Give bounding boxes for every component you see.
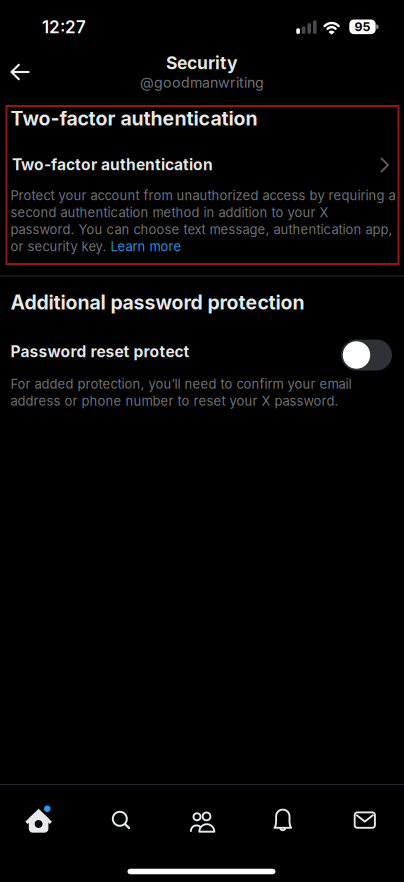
button[interactable]: Search	[86, 795, 156, 845]
staticText: Two-factor authentication	[12, 155, 213, 174]
button[interactable]: Back	[0, 50, 44, 94]
staticText: password. You can choose text message, a…	[10, 222, 392, 237]
staticText: or security key.	[10, 239, 110, 254]
staticText: second authentication method in addition…	[10, 205, 328, 220]
staticText: Security	[166, 52, 238, 74]
staticText: 95	[354, 19, 370, 34]
button[interactable]: Notifications	[248, 795, 318, 845]
staticText: @goodmanwriting	[140, 74, 264, 91]
staticText: 12:27	[42, 17, 86, 37]
staticText: Additional password protection	[10, 291, 304, 314]
staticText: Password reset protect	[10, 342, 189, 361]
button[interactable]: Learn more	[110, 239, 181, 254]
staticText: For added protection, you’ll need to con…	[10, 376, 351, 392]
staticText: Learn more	[110, 239, 181, 254]
button[interactable]: Messages	[329, 795, 399, 845]
button[interactable]: Home	[5, 795, 75, 845]
staticText: Protect your account from unauthorized a…	[10, 188, 395, 203]
button[interactable]: Communities	[167, 795, 237, 845]
staticText: address or phone number to reset your X …	[10, 393, 338, 409]
staticText: Two-factor authentication	[10, 107, 257, 130]
button[interactable]: Password reset protect	[341, 339, 392, 370]
button[interactable]: Two-factor authentication	[12, 142, 393, 186]
